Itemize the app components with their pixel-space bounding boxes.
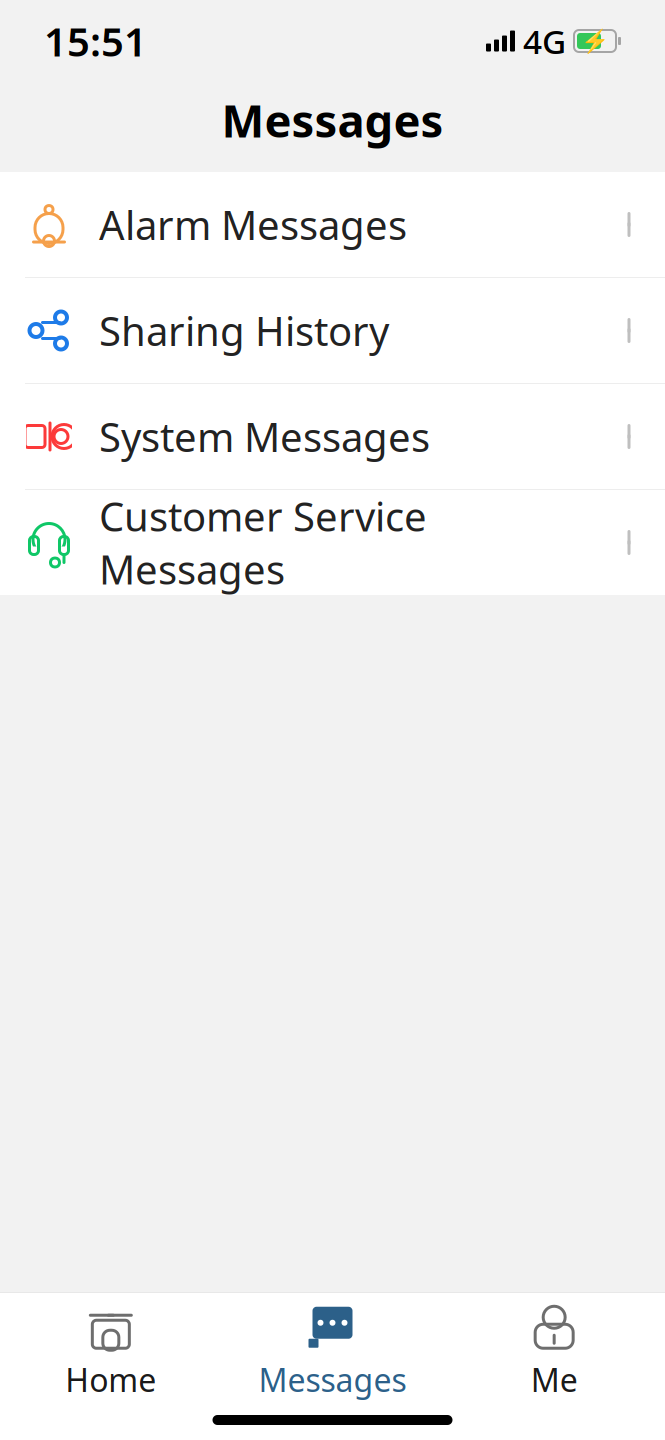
button[interactable]: System Messages: [0, 384, 665, 490]
button[interactable]: Messages: [222, 1293, 443, 1401]
staticText: ⚡: [581, 28, 609, 54]
button[interactable]: Sharing History: [0, 278, 665, 384]
staticText: Messages: [221, 90, 443, 150]
staticText: Messages: [258, 1358, 406, 1401]
staticText: 4G: [523, 19, 566, 63]
staticText: System Messages: [99, 410, 430, 463]
button[interactable]: Me: [443, 1293, 665, 1401]
staticText: 15:51: [44, 14, 147, 67]
staticText: Me: [531, 1358, 578, 1401]
button[interactable]: Customer Service Messages: [0, 490, 665, 595]
staticText: Alarm Messages: [99, 198, 407, 251]
button[interactable]: Home: [0, 1293, 222, 1401]
staticText: Sharing History: [99, 304, 389, 357]
staticText: Home: [65, 1358, 156, 1401]
button[interactable]: Alarm Messages: [0, 172, 665, 278]
staticText: Customer Service Messages: [99, 489, 427, 596]
